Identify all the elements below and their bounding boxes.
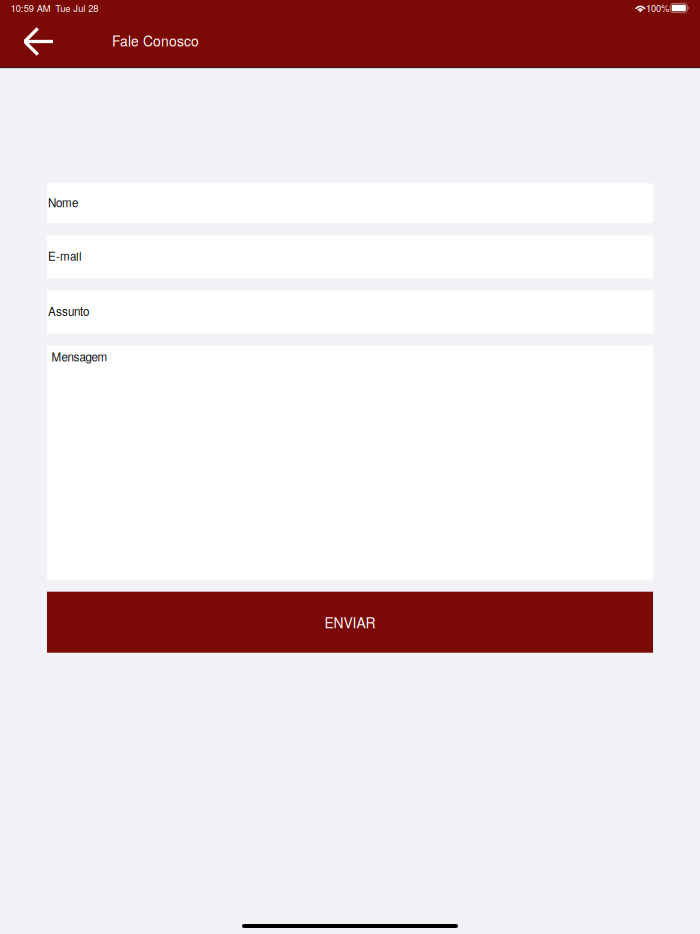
button[interactable]: Assunto [47, 290, 653, 334]
staticText: 10:59 AM [11, 1, 51, 15]
staticText: Mensagem [51, 348, 107, 365]
staticText: ENVIAR [324, 612, 375, 632]
button[interactable]: Nome [47, 183, 653, 223]
staticText: 100% [646, 1, 669, 15]
staticText: Nome [48, 194, 78, 210]
staticText: Assunto [48, 303, 89, 319]
button[interactable]: ENVIAR [47, 592, 653, 653]
staticText: E-mail [48, 247, 82, 264]
staticText: Tue Jul 28 [55, 1, 98, 15]
button[interactable]: Mensagem [47, 346, 653, 580]
button[interactable]: Back [0, 20, 112, 61]
staticText: Fale Conosco [112, 31, 199, 50]
button[interactable]: E-mail [47, 235, 653, 278]
